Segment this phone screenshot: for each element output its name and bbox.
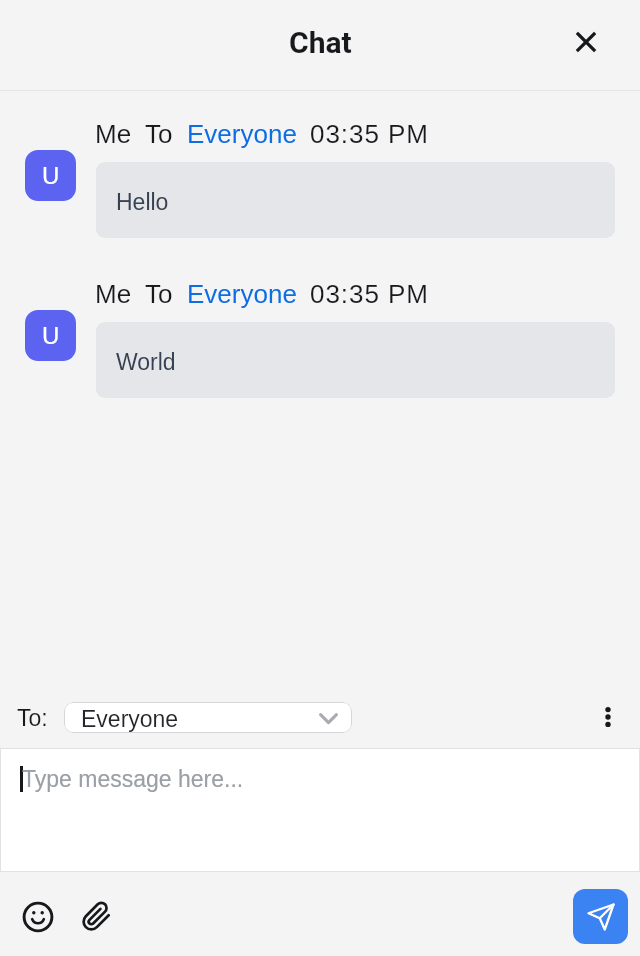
staticText: To	[145, 119, 173, 148]
staticText: Hello	[116, 189, 169, 215]
staticText: Chat	[289, 25, 352, 60]
button[interactable]: Me	[0, 90, 640, 250]
staticText: Everyone	[81, 706, 179, 732]
staticText: Type message here...	[22, 766, 244, 792]
staticText: Everyone	[187, 279, 297, 308]
button[interactable]: Send	[573, 889, 628, 944]
staticText: U	[42, 162, 60, 189]
button[interactable]: Me	[0, 250, 640, 410]
staticText: To	[145, 279, 173, 308]
button[interactable]: Attach file	[75, 895, 117, 937]
staticText: Everyone	[187, 119, 297, 148]
button[interactable]: Everyone	[64, 702, 352, 733]
staticText: World	[116, 349, 176, 375]
staticText: Me	[95, 119, 132, 148]
button[interactable]: Close	[568, 24, 604, 60]
staticText: Me	[95, 279, 132, 308]
button[interactable]: More options	[590, 699, 626, 735]
staticText: 03:35 PM	[310, 119, 429, 148]
staticText: To:	[17, 705, 48, 731]
button[interactable]: Type message here...	[0, 748, 640, 872]
staticText: 03:35 PM	[310, 279, 429, 308]
staticText: U	[42, 322, 60, 349]
button[interactable]: Emoji	[15, 894, 61, 940]
